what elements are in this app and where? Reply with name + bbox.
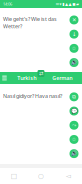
staticText: ✕: [72, 17, 76, 23]
button[interactable]: Home: [27, 172, 55, 180]
staticText: ▲: [65, 2, 68, 6]
staticText: ▰: [76, 2, 79, 6]
staticText: Turkish: [17, 74, 36, 82]
staticText: Nasıl gidiyor? Hava nasıl?: [3, 92, 62, 99]
staticText: German: [52, 74, 72, 82]
button[interactable]: Share: [68, 120, 79, 131]
staticText: ⇄: [39, 70, 43, 77]
button[interactable]: German: [44, 72, 80, 84]
staticText: ⧉: [72, 94, 76, 99]
staticText: ▮: [62, 2, 64, 6]
button[interactable]: Copy translation: [68, 91, 79, 102]
staticText: ☆: [71, 136, 76, 142]
staticText: ◅: [66, 172, 71, 180]
staticText: ☆: [71, 45, 76, 51]
button[interactable]: Turkish: [9, 72, 44, 84]
staticText: ◼: [72, 2, 75, 6]
button[interactable]: Add to favorites: [68, 43, 79, 54]
button[interactable]: Swap languages: [37, 70, 44, 77]
staticText: ▲: [69, 2, 72, 6]
staticText: □: [11, 172, 17, 180]
staticText: ▾: [59, 2, 61, 6]
button[interactable]: Back: [55, 172, 82, 180]
staticText: 14:06: [3, 1, 12, 7]
button[interactable]: Save offline: [68, 29, 79, 40]
staticText: Wie geht's? Wie ist das Wetter?: [3, 15, 57, 30]
button[interactable]: Clear text: [68, 14, 79, 25]
button[interactable]: Conversation: [68, 105, 79, 116]
button[interactable]: Menu: [0, 73, 9, 82]
staticText: 💬: [70, 108, 77, 114]
button[interactable]: Listen: [68, 57, 79, 68]
staticText: ⤳: [72, 123, 76, 128]
staticText: ✉: [56, 2, 59, 6]
staticText: 🔊: [70, 59, 77, 66]
staticText: 🔊: [70, 151, 77, 157]
staticText: ○: [38, 172, 44, 180]
button[interactable]: Listen: [68, 148, 79, 159]
staticText: ↓: [72, 31, 76, 37]
button[interactable]: Recent apps: [0, 172, 27, 180]
button[interactable]: Add to favorites: [68, 134, 79, 145]
